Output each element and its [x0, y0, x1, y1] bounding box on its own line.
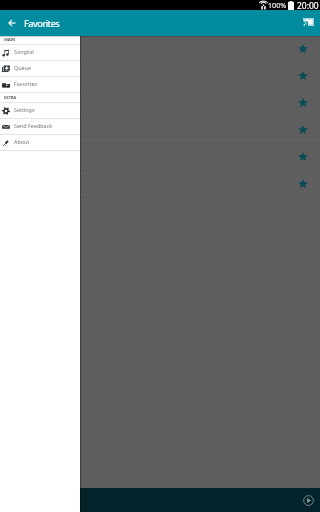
staticText: About: [14, 138, 30, 145]
button[interactable]: [0, 144, 320, 171]
button[interactable]: [0, 117, 320, 144]
staticText: Send Feedback: [14, 122, 53, 129]
staticText: Favorites: [14, 80, 38, 87]
button[interactable]: Send Feedback: [0, 119, 80, 134]
button[interactable]: [0, 36, 320, 63]
button[interactable]: Queue: [0, 61, 80, 76]
button[interactable]: Back: [0, 11, 23, 34]
staticText: Favorites: [24, 17, 60, 30]
staticText: Queue: [14, 64, 31, 71]
button[interactable]: About: [0, 135, 80, 150]
button[interactable]: Favorites: [0, 77, 80, 92]
staticText: Songlist: [14, 48, 35, 55]
button[interactable]: Play: [298, 490, 318, 510]
button[interactable]: Songlist: [0, 45, 80, 60]
staticText: EXTRA: [4, 95, 16, 101]
button[interactable]: [0, 171, 320, 198]
staticText: Settings: [14, 106, 35, 113]
button[interactable]: Cast: [297, 11, 320, 34]
button[interactable]: Settings: [0, 103, 80, 118]
staticText: MAIN: [4, 37, 15, 43]
button[interactable]: [0, 63, 320, 90]
staticText: 20:00: [297, 0, 319, 10]
button[interactable]: [0, 90, 320, 117]
staticText: 100%: [268, 0, 287, 10]
